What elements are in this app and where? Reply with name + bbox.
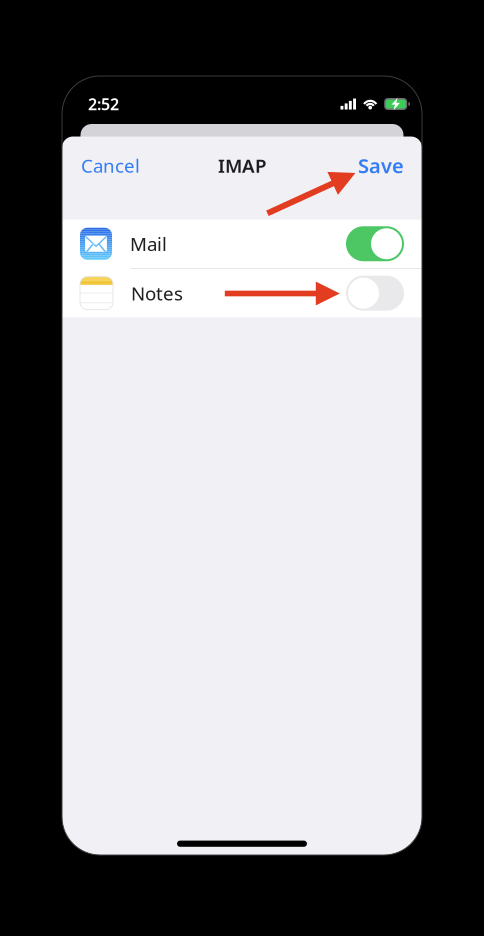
button[interactable]: Cancel bbox=[62, 142, 159, 189]
staticText: Save bbox=[358, 152, 404, 179]
staticText: Cancel bbox=[81, 153, 140, 178]
button[interactable]: Notes bbox=[62, 269, 422, 317]
staticText: IMAP bbox=[218, 153, 266, 178]
staticText: Mail bbox=[130, 231, 167, 256]
staticText: Notes bbox=[131, 281, 183, 306]
staticText: 2:52 bbox=[88, 93, 119, 115]
button[interactable]: Mail bbox=[62, 219, 422, 268]
button[interactable]: Save bbox=[340, 141, 422, 190]
